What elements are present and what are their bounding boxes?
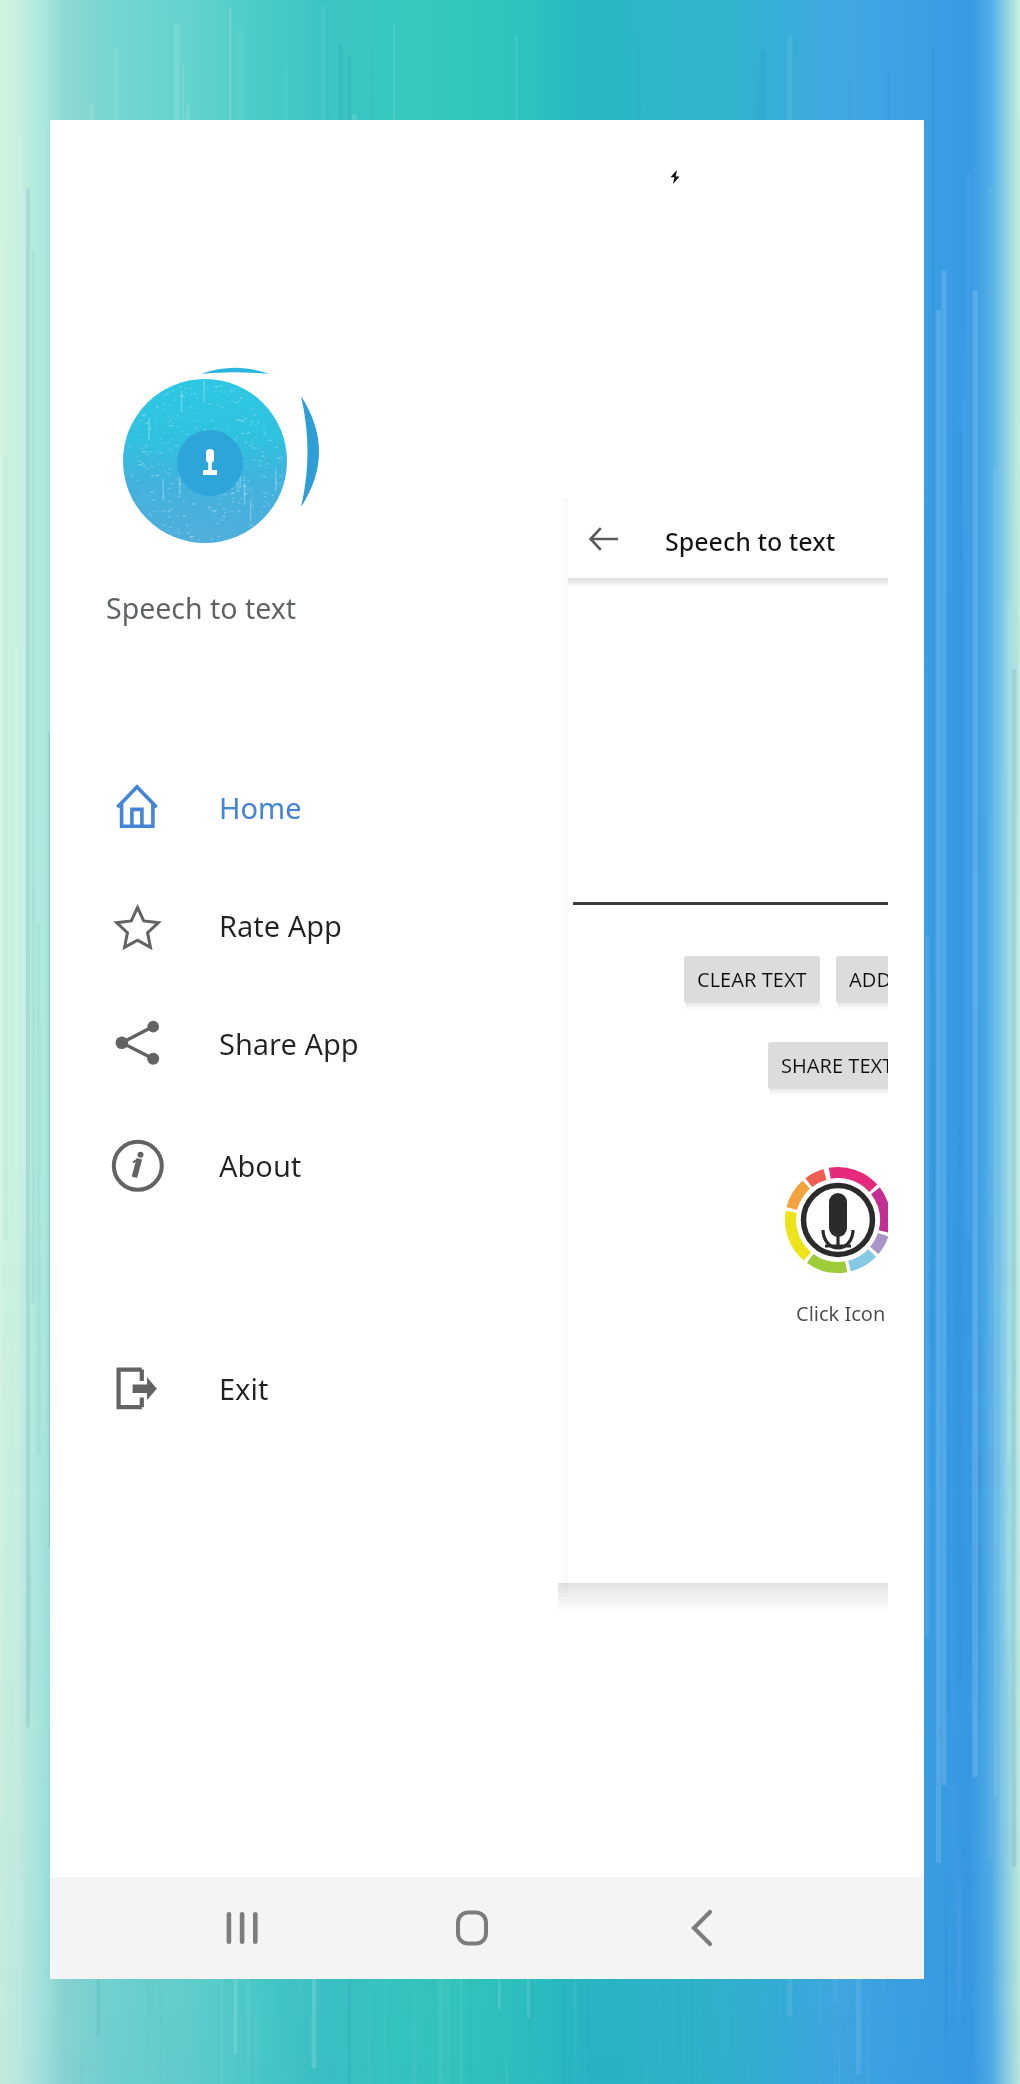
button[interactable]: Rate App	[50, 877, 550, 973]
button[interactable]: SHARE TEXT	[768, 1042, 888, 1089]
button[interactable]: ADD TEXT	[836, 956, 888, 1003]
staticText: CLEAR TEXT	[697, 966, 807, 993]
button[interactable]: Home	[402, 1877, 542, 1979]
button[interactable]: Share App	[50, 995, 550, 1091]
button[interactable]: Back	[588, 523, 620, 555]
staticText: Speech to text	[665, 524, 836, 558]
staticText: Home	[219, 788, 302, 827]
staticText: Speech to text	[106, 589, 297, 628]
button[interactable]: Exit	[50, 1340, 550, 1436]
button[interactable]: Home	[50, 759, 550, 855]
button[interactable]: CLEAR TEXT	[684, 956, 820, 1003]
staticText: Rate App	[219, 906, 342, 945]
button[interactable]: About	[50, 1117, 550, 1213]
staticText: ADD TEXT	[849, 966, 888, 993]
button[interactable]: Back	[632, 1877, 772, 1979]
staticText: SHARE TEXT	[781, 1052, 888, 1079]
staticText: Exit	[219, 1369, 269, 1408]
button[interactable]: Recent apps	[171, 1877, 311, 1979]
staticText: Share App	[219, 1024, 359, 1063]
button[interactable]: Start speech recognition	[783, 1166, 888, 1276]
staticText: Click Icon	[796, 1300, 886, 1327]
staticText: About	[219, 1146, 302, 1185]
